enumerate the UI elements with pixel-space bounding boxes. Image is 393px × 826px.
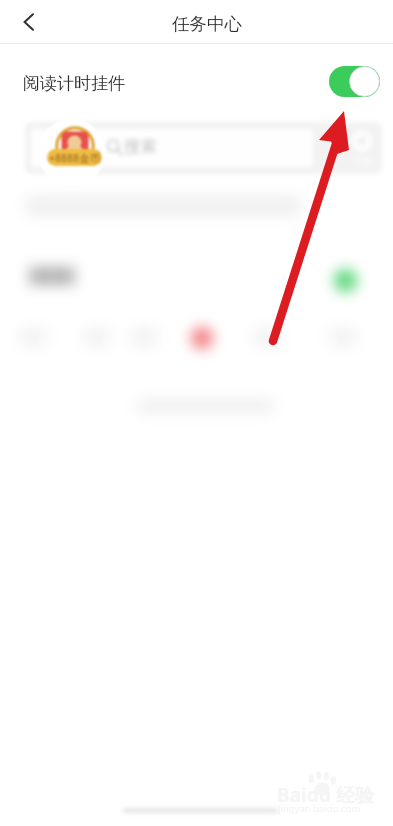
staticText: 搜索: [124, 136, 157, 157]
staticText: jingyan.baidu.com: [278, 802, 361, 815]
staticText: Baidu 经验: [277, 782, 374, 808]
button[interactable]: Back: [7, 0, 51, 44]
staticText: 任务中心: [172, 13, 242, 35]
button[interactable]: Toggle reading timer widget: [329, 66, 380, 97]
staticText: 阅读计时挂件: [23, 73, 125, 94]
button[interactable]: 阅读计时挂件: [0, 53, 393, 109]
staticText: +8888金币: [49, 151, 101, 165]
